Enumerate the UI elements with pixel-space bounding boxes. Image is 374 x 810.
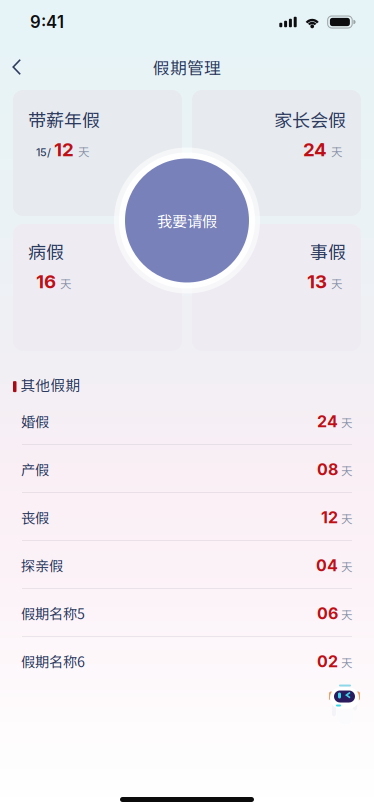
- staticText: 天: [338, 462, 352, 478]
- staticText: 我要请假: [157, 209, 217, 232]
- staticText: 12: [54, 138, 74, 161]
- button[interactable]: 家长会假: [192, 90, 361, 216]
- staticText: 04: [316, 556, 338, 575]
- staticText: 天: [338, 510, 352, 526]
- staticText: 产假: [21, 459, 49, 479]
- staticText: 12: [321, 508, 338, 527]
- staticText: 06: [317, 604, 338, 623]
- staticText: 其他假期: [20, 374, 80, 395]
- button[interactable]: 婚假: [0, 397, 374, 445]
- button[interactable]: 产假: [0, 445, 374, 493]
- staticText: 带薪年假: [28, 106, 100, 132]
- staticText: 假期名称5: [21, 603, 85, 623]
- staticText: 婚假: [21, 411, 49, 431]
- staticText: 家长会假: [274, 106, 346, 132]
- staticText: 13: [307, 270, 327, 293]
- button[interactable]: 我要请假: [114, 147, 260, 293]
- button[interactable]: 丧假: [0, 493, 374, 541]
- staticText: 假期管理: [153, 55, 221, 79]
- staticText: 天: [331, 143, 342, 159]
- staticText: 08: [317, 460, 338, 479]
- button[interactable]: 探亲假: [0, 541, 374, 589]
- staticText: 16: [36, 270, 56, 293]
- staticText: 假期名称6: [21, 651, 85, 671]
- staticText: 丧假: [21, 507, 49, 527]
- staticText: 天: [338, 654, 352, 670]
- staticText: 02: [317, 652, 338, 671]
- button[interactable]: 带薪年假: [13, 90, 182, 216]
- button[interactable]: Assistant: [328, 687, 362, 737]
- button[interactable]: Back: [0, 47, 40, 86]
- staticText: 天: [78, 143, 89, 159]
- button[interactable]: 事假: [192, 224, 361, 351]
- staticText: 病假: [28, 238, 64, 264]
- button[interactable]: 病假: [13, 224, 182, 351]
- staticText: 天: [338, 558, 352, 574]
- button[interactable]: 假期名称5: [0, 589, 374, 637]
- staticText: 事假: [310, 238, 346, 264]
- button[interactable]: 假期名称6: [0, 637, 374, 685]
- staticText: 天: [331, 275, 342, 291]
- staticText: 天: [60, 275, 71, 291]
- staticText: 天: [338, 606, 352, 622]
- staticText: 15/: [36, 146, 51, 159]
- staticText: 探亲假: [21, 555, 63, 575]
- staticText: 24: [317, 412, 338, 431]
- staticText: 9:41: [30, 12, 64, 32]
- staticText: 天: [338, 414, 352, 430]
- staticText: 24: [303, 138, 327, 161]
